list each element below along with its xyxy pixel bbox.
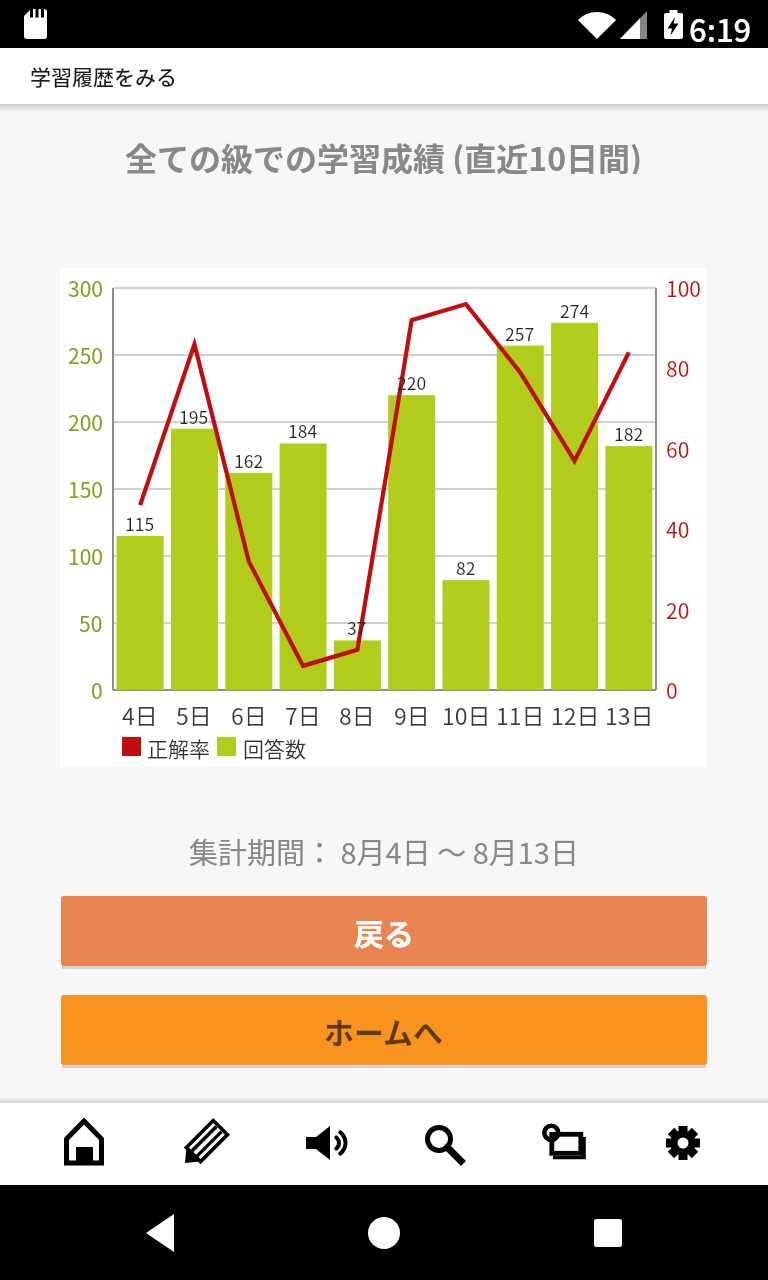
button[interactable] (504, 1103, 624, 1185)
staticText: 100 (68, 541, 103, 571)
staticText: 11日 (496, 698, 545, 726)
button[interactable] (624, 1103, 744, 1185)
staticText: 162 (234, 448, 264, 470)
staticText: 250 (68, 340, 103, 370)
staticText: 6日 (231, 698, 267, 726)
staticText: 0 (666, 675, 678, 705)
staticText: 5日 (176, 698, 212, 726)
button[interactable] (144, 1103, 264, 1185)
button[interactable]: ホームへ (61, 995, 707, 1065)
staticText: 12日 (551, 698, 600, 726)
staticText: 100 (666, 273, 701, 303)
staticText: 37 (347, 615, 367, 637)
staticText: 0 (91, 675, 103, 705)
staticText: 10日 (442, 698, 491, 726)
button[interactable] (544, 1185, 672, 1280)
staticText: 195 (179, 404, 209, 426)
staticText: 4日 (122, 698, 158, 726)
staticText: 学習履歴をみる (30, 61, 177, 91)
staticText: 全ての級での学習成績 (直近10日間) (125, 134, 643, 174)
staticText: 200 (68, 407, 103, 437)
staticText: 300 (68, 273, 103, 303)
staticText: 274 (560, 298, 590, 320)
button[interactable] (24, 1103, 144, 1185)
staticText: ホームへ (324, 1009, 444, 1052)
staticText: 9日 (394, 698, 430, 726)
staticText: 戻る (354, 910, 414, 953)
staticText: 82 (456, 555, 476, 577)
staticText: 257 (505, 321, 535, 343)
staticText: 回答数 (243, 733, 306, 760)
staticText: 115 (125, 511, 155, 533)
staticText: 集計期間： 8月4日 ～ 8月13日 (189, 830, 579, 866)
staticText: 150 (68, 474, 103, 504)
staticText: 60 (666, 434, 690, 464)
staticText: 220 (397, 370, 427, 392)
staticText: 20 (666, 595, 690, 625)
button[interactable] (320, 1185, 448, 1280)
button[interactable]: 戻る (61, 896, 707, 966)
staticText: 7日 (285, 698, 321, 726)
staticText: 184 (288, 418, 318, 440)
button[interactable] (384, 1103, 504, 1185)
button[interactable] (264, 1103, 384, 1185)
staticText: 6:19 (689, 6, 752, 42)
button[interactable] (96, 1185, 224, 1280)
staticText: 13日 (605, 698, 654, 726)
staticText: 50 (79, 608, 103, 638)
staticText: 182 (614, 421, 644, 443)
staticText: 正解率 (147, 733, 210, 760)
staticText: 40 (666, 514, 690, 544)
staticText: 8日 (339, 698, 375, 726)
staticText: 80 (666, 353, 690, 383)
